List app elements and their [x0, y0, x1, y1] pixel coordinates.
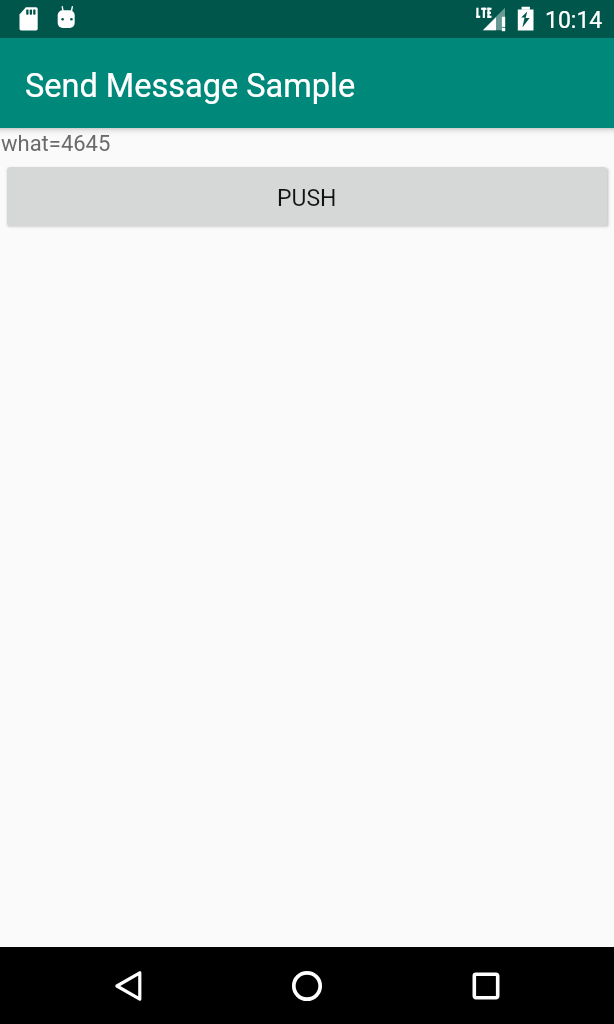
staticText: 10:14	[545, 7, 603, 34]
button[interactable]: Home	[271, 955, 343, 1017]
other: Android	[56, 4, 76, 30]
staticText: Send Message Sample	[25, 67, 356, 105]
other: Battery charging	[517, 6, 535, 32]
button[interactable]: Recent apps	[450, 955, 522, 1017]
button[interactable]: PUSH	[7, 167, 607, 226]
staticText: what=4645	[1, 131, 111, 157]
other: SD card	[19, 7, 39, 32]
button[interactable]: Back	[92, 955, 164, 1017]
staticText: PUSH	[277, 185, 337, 212]
